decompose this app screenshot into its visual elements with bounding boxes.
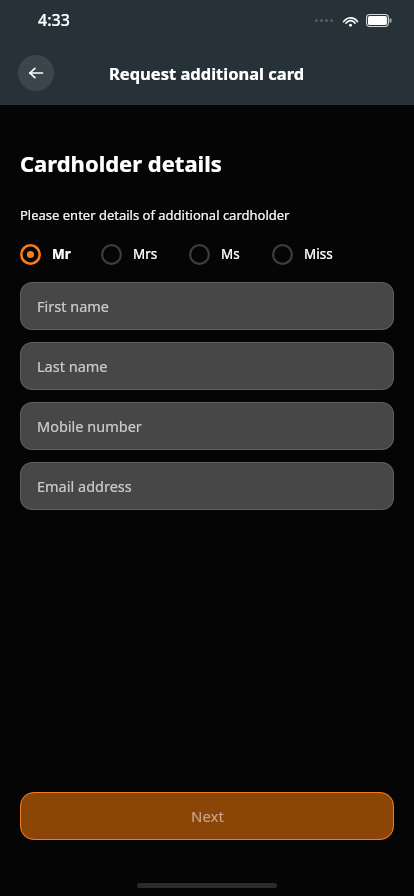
button[interactable]: First name bbox=[20, 282, 394, 330]
staticText: Request additional card bbox=[109, 62, 305, 84]
staticText: Ms bbox=[221, 245, 240, 263]
staticText: Cardholder details bbox=[20, 148, 222, 178]
staticText: Next bbox=[191, 806, 224, 826]
button[interactable]: Back bbox=[18, 55, 54, 91]
staticText: Mobile number bbox=[37, 416, 142, 436]
staticText: Mrs bbox=[133, 245, 158, 263]
staticText: Mr bbox=[52, 245, 71, 263]
button[interactable]: Miss bbox=[272, 238, 333, 270]
button[interactable]: Next bbox=[20, 792, 394, 840]
staticText: Last name bbox=[37, 356, 108, 376]
button[interactable]: Mrs bbox=[101, 238, 158, 270]
button[interactable]: Last name bbox=[20, 342, 394, 390]
staticText: Miss bbox=[304, 245, 333, 263]
staticText: First name bbox=[37, 296, 110, 316]
button[interactable]: Mr bbox=[20, 238, 71, 270]
staticText: Email address bbox=[37, 476, 132, 496]
button[interactable]: Email address bbox=[20, 462, 394, 510]
button[interactable]: Ms bbox=[189, 238, 240, 270]
staticText: 4:33 bbox=[38, 9, 70, 31]
button[interactable]: Mobile number bbox=[20, 402, 394, 450]
staticText: Please enter details of additional cardh… bbox=[20, 206, 290, 224]
